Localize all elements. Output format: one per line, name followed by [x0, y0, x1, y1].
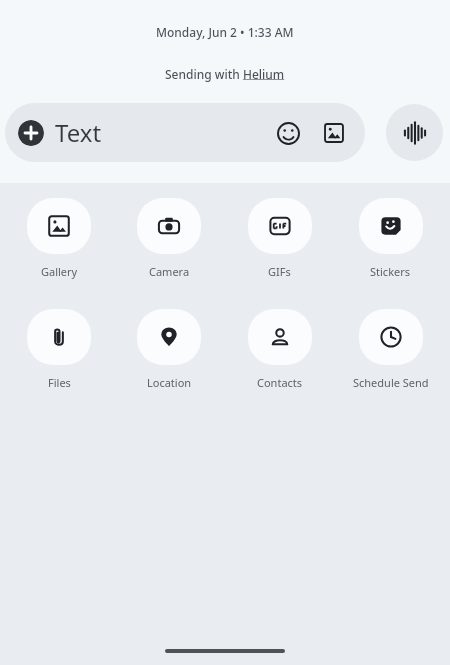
staticText: Monday, Jun 2 • 1:33 AM [156, 24, 294, 40]
staticText: Gallery [41, 264, 78, 279]
button[interactable]: Add attachment [18, 120, 44, 146]
button[interactable]: GIFs [224, 196, 335, 281]
button[interactable]: Gallery [319, 118, 349, 148]
button[interactable]: Stickers [335, 196, 446, 281]
staticText: Contacts [257, 375, 303, 390]
button[interactable]: Schedule Send [335, 307, 446, 392]
staticText: Text message [55, 116, 164, 149]
staticText: Schedule Send [353, 375, 429, 390]
button[interactable]: Sending with Helium [165, 66, 285, 82]
button[interactable]: Files [4, 307, 114, 392]
staticText: Camera [149, 264, 190, 279]
button[interactable]: Add attachment [5, 103, 365, 162]
button[interactable]: Gallery [4, 196, 114, 281]
button[interactable]: Contacts [224, 307, 335, 392]
staticText: GIFs [268, 264, 291, 279]
button[interactable]: Emoji [273, 118, 303, 148]
staticText: Location [147, 375, 192, 390]
button[interactable]: Voice message [386, 104, 443, 161]
staticText: Stickers [370, 264, 411, 279]
button[interactable]: Location [114, 307, 224, 392]
staticText: Files [48, 375, 71, 390]
button[interactable]: Camera [114, 196, 224, 281]
